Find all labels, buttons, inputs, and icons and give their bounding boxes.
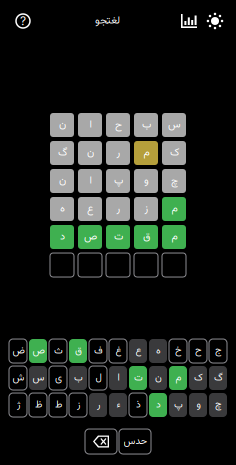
button[interactable]: ک (189, 366, 207, 390)
button[interactable]: س (29, 366, 47, 390)
staticText: حدس (123, 434, 147, 449)
button[interactable]: ء (109, 393, 127, 417)
staticText: ا (89, 173, 91, 189)
button[interactable]: ن (149, 366, 167, 390)
staticText: ت (113, 229, 122, 245)
staticText: ح (194, 343, 201, 359)
staticText: ک (169, 145, 178, 161)
button[interactable]: خ (169, 339, 187, 363)
staticText: س (167, 117, 180, 133)
button[interactable]: ح (189, 339, 207, 363)
button[interactable]: ب (69, 366, 87, 390)
staticText: ظ (34, 397, 41, 413)
staticText: ژ (16, 397, 19, 413)
staticText: ق (74, 343, 81, 359)
staticText: ن (154, 370, 161, 386)
button[interactable]: ج (209, 339, 227, 363)
staticText: ن (58, 173, 65, 189)
staticText: ت (133, 370, 142, 386)
staticText: و (143, 173, 148, 189)
staticText: م (171, 229, 177, 245)
staticText: گ (213, 370, 222, 386)
button[interactable]: ف (89, 339, 107, 363)
button[interactable]: ض (9, 339, 27, 363)
button[interactable]: ا (109, 366, 127, 390)
button[interactable]: ظ (29, 393, 47, 417)
staticText: ف (93, 343, 102, 359)
button[interactable]: ژ (9, 393, 27, 417)
staticText: پ (113, 173, 122, 189)
button[interactable]: ق (69, 339, 87, 363)
button[interactable]: ش (9, 366, 27, 390)
staticText: ب (73, 370, 82, 386)
button[interactable]: ر (89, 393, 107, 417)
button[interactable]: و (189, 393, 207, 417)
staticText: ی (54, 370, 61, 386)
button[interactable]: غ (109, 339, 127, 363)
staticText: د (155, 397, 160, 413)
staticText: ر (96, 397, 99, 413)
button[interactable]: ی (49, 366, 67, 390)
button[interactable]: ل (89, 366, 107, 390)
button[interactable]: د (149, 393, 167, 417)
staticText: ب (141, 117, 150, 133)
staticText: ر (116, 145, 120, 161)
button[interactable]: ص (29, 339, 47, 363)
staticText: ء (116, 397, 120, 413)
staticText: و (196, 397, 200, 413)
staticText: لغتجو (94, 13, 119, 29)
staticText: س (32, 370, 44, 386)
button[interactable]: چ (209, 393, 227, 417)
staticText: ح (114, 117, 121, 133)
staticText: چ (214, 397, 221, 413)
staticText: م (171, 201, 177, 217)
button[interactable]: Statistics (176, 6, 202, 36)
staticText: م (175, 370, 181, 386)
staticText: غ (115, 343, 121, 359)
staticText: ض (12, 343, 24, 359)
staticText: ث (53, 343, 62, 359)
button[interactable]: ذ (129, 393, 147, 417)
staticText: ر (116, 201, 120, 217)
staticText: ن (58, 117, 65, 133)
staticText: د (59, 229, 64, 245)
staticText: م (143, 145, 149, 161)
button[interactable]: ع (129, 339, 147, 363)
staticText: ? (20, 14, 26, 28)
staticText: ش (12, 370, 24, 386)
staticText: ن (86, 145, 93, 161)
button[interactable]: پ (169, 393, 187, 417)
button[interactable]: Toggle theme (202, 6, 228, 36)
staticText: ا (117, 370, 119, 386)
staticText: ذ (135, 397, 140, 413)
staticText: ج (214, 343, 221, 359)
staticText: ع (86, 201, 93, 217)
staticText: ص (83, 229, 96, 245)
staticText: ز (144, 201, 148, 217)
button[interactable]: ت (129, 366, 147, 390)
staticText: گ (57, 145, 66, 161)
staticText: ه (59, 201, 64, 217)
staticText: ه (155, 343, 160, 359)
button[interactable]: ط (49, 393, 67, 417)
button[interactable]: م (169, 366, 187, 390)
staticText: خ (174, 343, 181, 359)
button[interactable]: Delete (85, 429, 117, 454)
button[interactable]: ث (49, 339, 67, 363)
button[interactable]: Help (8, 6, 38, 36)
button[interactable]: گ (209, 366, 227, 390)
staticText: ک (193, 370, 202, 386)
button[interactable]: ز (69, 393, 87, 417)
staticText: پ (173, 397, 182, 413)
staticText: ع (135, 343, 141, 359)
staticText: چ (170, 173, 177, 189)
button[interactable]: ه (149, 339, 167, 363)
button[interactable]: حدس (119, 429, 151, 454)
staticText: ق (142, 229, 149, 245)
staticText: ا (89, 117, 91, 133)
staticText: ص (32, 343, 44, 359)
staticText: ز (76, 397, 79, 413)
staticText: ل (95, 370, 101, 386)
staticText: ط (54, 397, 61, 413)
